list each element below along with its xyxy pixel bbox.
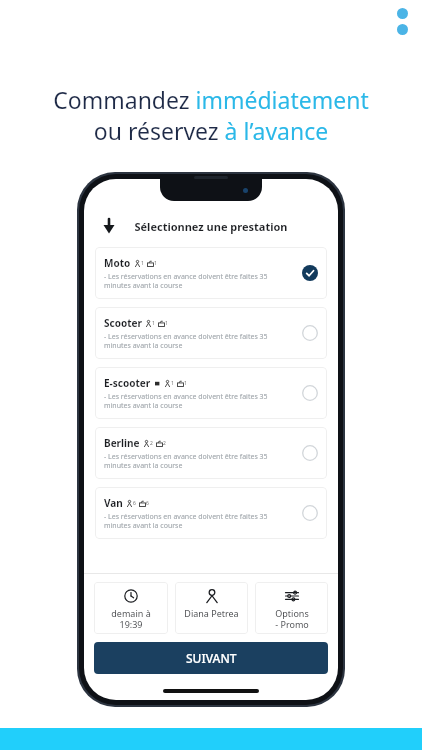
staticText: Scooter (104, 316, 142, 330)
staticText: - Les réservations en avance doivent êtr… (104, 512, 296, 530)
staticText: 6 (133, 500, 136, 507)
staticText: Sélectionnez une prestation (134, 219, 288, 234)
staticText: 1 (141, 260, 144, 267)
button[interactable]: Moto (95, 247, 327, 299)
button[interactable]: Diana Petrea (175, 582, 248, 634)
staticText: - Les réservations en avance doivent êtr… (104, 272, 296, 290)
staticText: - Les réservations en avance doivent êtr… (104, 332, 296, 350)
staticText: 2 (150, 440, 153, 447)
staticText: 6 (146, 500, 149, 507)
staticText: 1 (165, 320, 168, 327)
staticText: Van (104, 496, 123, 510)
staticText: - Les réservations en avance doivent êtr… (104, 392, 296, 410)
button[interactable]: Options - Promo (255, 582, 328, 634)
staticText: 1 (154, 260, 157, 267)
staticText: - Les réservations en avance doivent êtr… (104, 452, 296, 470)
staticText: demain à 19:39 (111, 607, 151, 630)
staticText: Berline (104, 436, 140, 450)
staticText: Options - Promo (275, 607, 309, 630)
button[interactable]: Van (95, 487, 327, 539)
button[interactable]: SUIVANT (94, 642, 328, 674)
button[interactable]: E-scooter (95, 367, 327, 419)
staticText: 1 (152, 320, 155, 327)
staticText: 1 (184, 380, 187, 387)
staticText: SUIVANT (186, 650, 237, 666)
staticText: 2 (163, 440, 166, 447)
button[interactable]: Scooter (95, 307, 327, 359)
staticText: E-scooter (104, 376, 151, 390)
button[interactable]: demain à 19:39 (94, 582, 168, 634)
staticText: Moto (104, 256, 131, 270)
button[interactable]: Fermer (94, 211, 124, 241)
staticText: 1 (171, 380, 174, 387)
button[interactable]: Berline (95, 427, 327, 479)
staticText: Commandez immédiatement ou réservez à l’… (10, 84, 412, 147)
staticText: Diana Petrea (184, 607, 239, 619)
